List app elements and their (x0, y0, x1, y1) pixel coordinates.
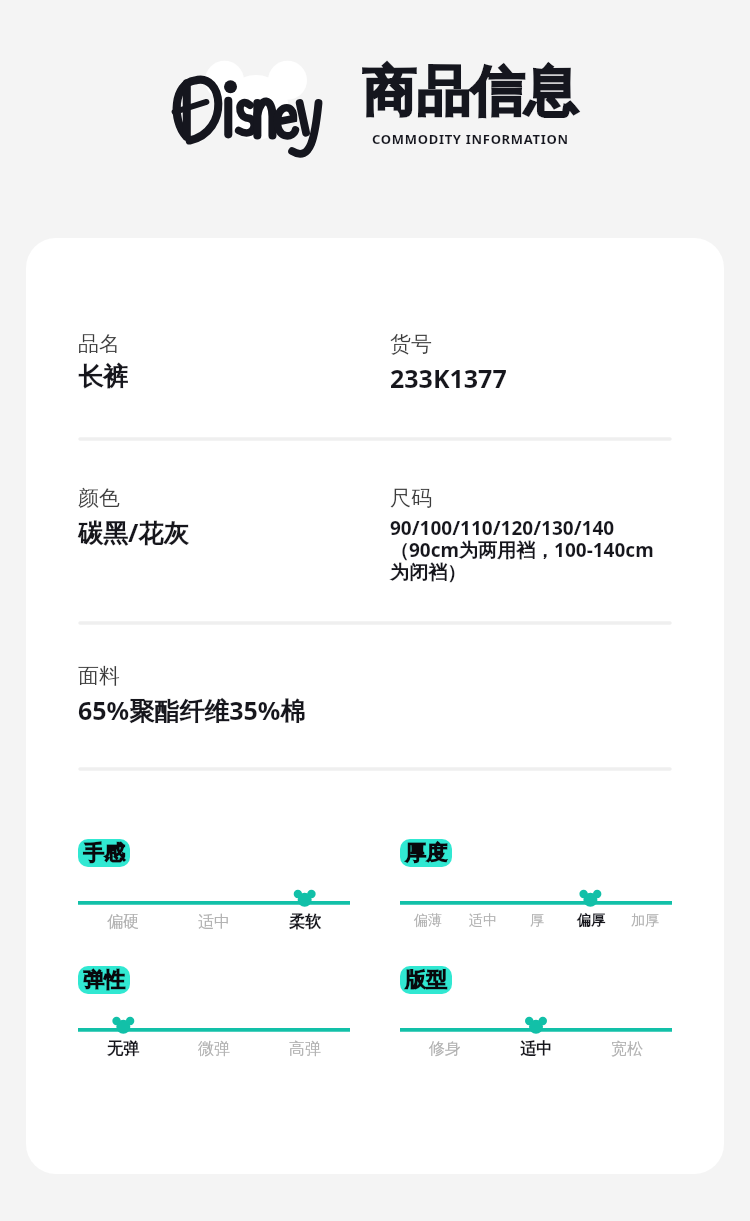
staticText: 高弹 (289, 1039, 321, 1059)
staticText: 90/100/110/120/130/140 （90cm为两用裆，100-140… (390, 515, 672, 585)
staticText: 偏厚 (577, 912, 605, 930)
staticText: 233K1377 (390, 361, 507, 395)
staticText: 厚 (530, 912, 544, 930)
staticText: 微弹 (198, 1039, 230, 1059)
staticText: 长裤 (78, 361, 128, 392)
button[interactable]: 厚度 (400, 839, 672, 930)
staticText: 面料 (78, 663, 120, 689)
staticText: 柔软 (289, 912, 321, 932)
staticText: 弹性 (83, 967, 125, 993)
staticText: 颜色 (78, 485, 120, 511)
staticText: 偏薄 (414, 912, 442, 930)
staticText: 品名 (78, 331, 120, 357)
staticText: 无弹 (107, 1039, 139, 1059)
staticText: 宽松 (611, 1039, 643, 1059)
staticText: COMMODITY INFORMATION (372, 130, 569, 148)
staticText: 偏硬 (107, 912, 139, 932)
staticText: 尺码 (390, 485, 432, 511)
staticText: 适中 (198, 912, 230, 932)
button[interactable]: 手感 (78, 839, 350, 932)
staticText: 加厚 (631, 912, 659, 930)
staticText: 货号 (390, 331, 432, 357)
staticText: 适中 (469, 912, 497, 930)
staticText: 版型 (405, 967, 447, 993)
staticText: 手感 (83, 840, 125, 866)
button[interactable]: 弹性 (78, 966, 350, 1059)
staticText: 65%聚酯纤维35%棉 (78, 693, 306, 727)
staticText: 修身 (429, 1039, 461, 1059)
staticText: 碳黑/花灰 (78, 515, 189, 549)
button[interactable]: 版型 (400, 966, 672, 1059)
staticText: 适中 (520, 1039, 552, 1059)
staticText: 厚度 (405, 840, 447, 866)
other: Disney (172, 47, 340, 159)
staticText: 商品信息 (362, 58, 578, 126)
